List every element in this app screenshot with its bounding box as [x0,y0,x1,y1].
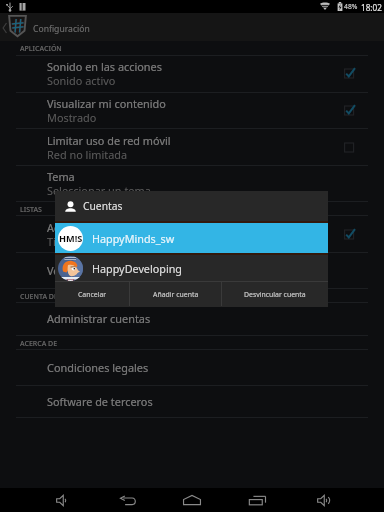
staticText: Añadir cuenta [153,290,199,299]
staticText: Condiciones legales [47,360,149,375]
staticText: 48% [344,2,358,11]
staticText: Software de terceros [47,394,153,409]
button[interactable]: HappyDeveloping [55,255,328,281]
staticText: Sonido activo [47,73,116,88]
staticText: HappyDeveloping [92,261,183,276]
button[interactable]: Añadir cuenta [130,282,221,306]
staticText: Cuentas [83,199,123,213]
staticText: Actualizar listas [47,220,127,235]
staticText: 18:02 [361,2,382,13]
staticText: Tema [47,169,75,184]
staticText: HappyMinds_sw [92,231,175,246]
button[interactable]: Cancelar [55,282,129,306]
button[interactable]: Volume down [37,488,85,512]
staticText: Cancelar [78,290,107,299]
button[interactable]: Condiciones legales [0,350,384,386]
staticText: Desvincular cuenta [244,290,306,299]
button[interactable]: Volume up [298,488,346,512]
staticText: Ticket actualizado [47,234,139,249]
staticText: Ver mis listas [47,263,114,278]
staticText: ACERCA DE [20,339,58,349]
button[interactable]: Ver mis listas [0,253,384,289]
staticText: APLICACIÓN [20,44,62,54]
staticText: Red no limitada [47,147,128,162]
button[interactable]: Administrar cuentas [0,303,384,336]
button[interactable]: Sonido en las acciones [0,55,384,92]
button[interactable]: Visualizar mi contenido [0,92,384,129]
button[interactable]: Back [104,488,152,512]
button[interactable]: Tema [0,165,384,202]
staticText: CUENTA DE USUARIO [20,292,91,302]
staticText: Administrar cuentas [47,311,151,326]
staticText: Configuración [33,23,90,35]
staticText: Seleccionar un tema [47,183,151,198]
button[interactable]: Home [168,488,216,512]
button[interactable]: Recents [233,488,281,512]
staticText: Limitar uso de red móvil [47,133,171,148]
button[interactable]: Limitar uso de red móvil [0,129,384,166]
staticText: Visualizar mi contenido [47,96,166,111]
button[interactable]: Software de terceros [0,386,384,418]
button[interactable]: Actualizar listas [0,216,384,253]
staticText: Sonido en las acciones [47,59,162,74]
button[interactable]: Desvincular cuenta [222,282,328,306]
staticText: LISTAS [20,205,42,215]
staticText: Mostrado [47,110,97,125]
staticText: HM!S [59,232,83,245]
button[interactable]: Back [0,13,32,41]
button[interactable]: HM!S [55,223,328,253]
